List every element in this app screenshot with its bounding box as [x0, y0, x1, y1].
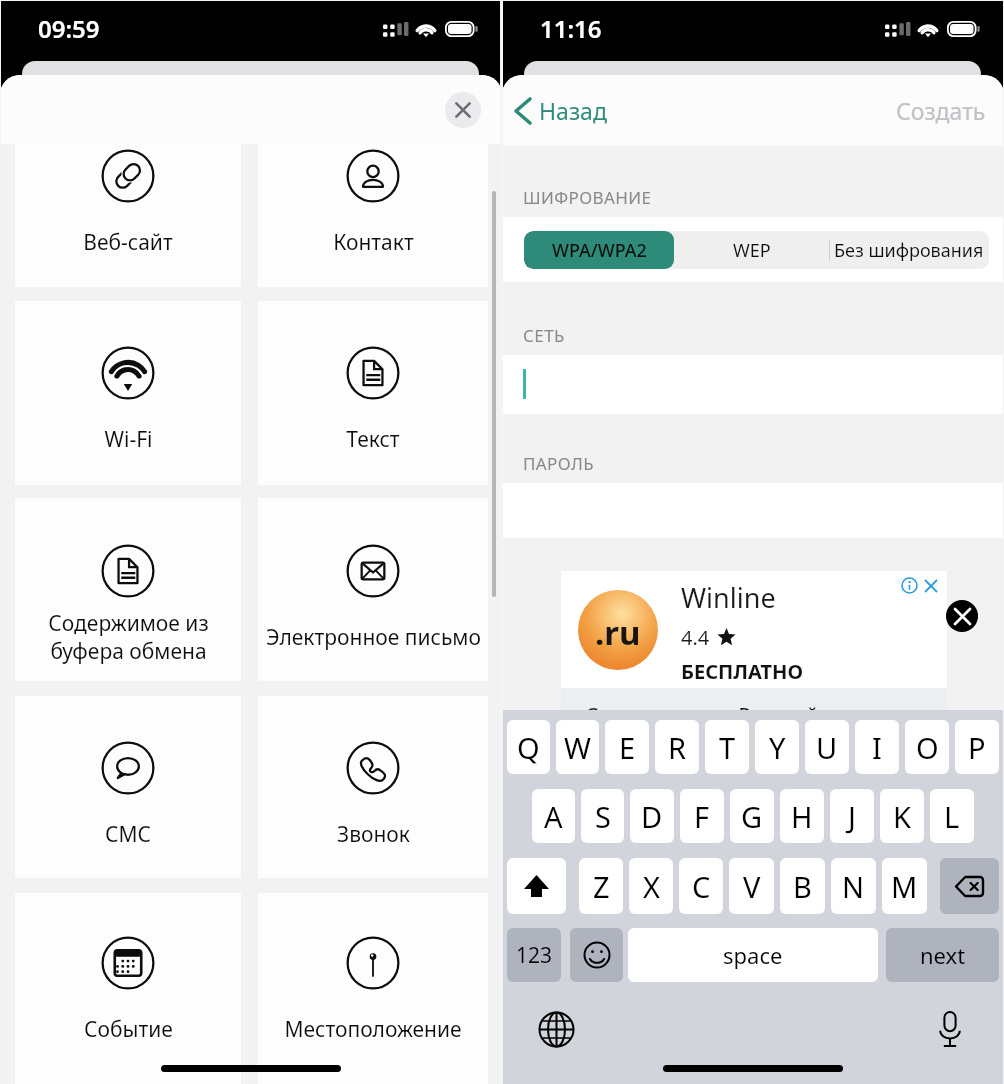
staticText: X: [643, 867, 660, 906]
staticText: B: [793, 867, 812, 906]
button[interactable]: Создать: [896, 95, 986, 126]
button[interactable]: next: [886, 928, 999, 982]
staticText: Q: [517, 728, 540, 767]
staticText: Контакт: [333, 228, 414, 257]
button[interactable]: F: [680, 789, 724, 843]
staticText: 09:59: [38, 12, 100, 45]
staticText: Z: [593, 867, 610, 906]
button[interactable]: H: [780, 789, 824, 843]
button[interactable]: Q: [507, 720, 550, 774]
staticText: Без шифрования: [834, 238, 984, 263]
button[interactable]: СМС: [15, 696, 241, 878]
button[interactable]: Местоположение: [258, 893, 488, 1084]
button[interactable]: Веб-сайт: [15, 144, 241, 287]
button[interactable]: WEP: [674, 231, 829, 269]
staticText: Содержимое Русский: [585, 702, 819, 710]
button[interactable]: C: [679, 858, 723, 914]
staticText: 4.4: [681, 624, 710, 651]
button[interactable]: Y: [755, 720, 799, 774]
button[interactable]: V: [729, 858, 774, 914]
staticText: D: [641, 797, 663, 836]
staticText: Текст: [346, 425, 400, 454]
button[interactable]: Закрыть рекламу: [946, 600, 978, 632]
staticText: P: [968, 728, 986, 767]
button[interactable]: Wi-Fi: [15, 301, 241, 485]
button[interactable]: B: [780, 858, 825, 914]
staticText: Электронное письмо: [266, 623, 481, 652]
staticText: .ru: [595, 610, 641, 655]
staticText: E: [619, 728, 636, 767]
button[interactable]: space: [628, 928, 878, 982]
staticText: СМС: [105, 820, 151, 849]
button[interactable]: J: [830, 789, 874, 843]
staticText: WEP: [733, 238, 771, 263]
staticText: 11:16: [540, 12, 602, 45]
staticText: O: [916, 728, 939, 767]
button[interactable]: W: [556, 720, 599, 774]
button[interactable]: Эмодзи: [570, 928, 623, 982]
button[interactable]: Сменить язык: [538, 1011, 575, 1048]
staticText: J: [848, 797, 856, 836]
button[interactable]: Звонок: [258, 696, 488, 878]
button[interactable]: Текст: [258, 301, 488, 485]
button[interactable]: U: [805, 720, 849, 774]
staticText: ПАРОЛЬ: [523, 452, 594, 475]
staticText: WPA/WPA2: [552, 238, 647, 263]
staticText: U: [816, 728, 838, 767]
button[interactable]: Событие: [15, 893, 241, 1084]
staticText: L: [944, 797, 960, 836]
button[interactable]: Shift: [507, 858, 566, 914]
button[interactable]: E: [605, 720, 649, 774]
staticText: Y: [769, 728, 786, 767]
staticText: W: [564, 728, 591, 767]
button[interactable]: Удалить: [940, 858, 999, 914]
button[interactable]: S: [581, 789, 624, 843]
button[interactable]: Диктовка: [936, 1010, 964, 1050]
button[interactable]: R: [655, 720, 699, 774]
button[interactable]: Z: [579, 858, 623, 914]
button[interactable]: X: [629, 858, 673, 914]
button[interactable]: M: [882, 858, 927, 914]
button[interactable]: 123: [507, 928, 561, 982]
button[interactable]: T: [705, 720, 749, 774]
staticText: Winline: [681, 579, 776, 616]
staticText: S: [595, 797, 611, 836]
button[interactable]: Закрыть: [445, 92, 481, 128]
staticText: Местоположение: [284, 1015, 462, 1044]
staticText: next: [920, 940, 966, 970]
staticText: A: [544, 797, 563, 836]
staticText: V: [743, 867, 761, 906]
button[interactable]: D: [630, 789, 674, 843]
button[interactable]: Назад: [514, 95, 607, 126]
staticText: F: [694, 797, 710, 836]
staticText: space: [723, 940, 783, 970]
staticText: C: [692, 867, 711, 906]
staticText: ШИФРОВАНИЕ: [523, 186, 652, 209]
staticText: СЕТЬ: [523, 324, 565, 347]
staticText: Wi-Fi: [104, 425, 153, 454]
button[interactable]: WPA/WPA2: [524, 231, 674, 269]
button[interactable]: Контакт: [258, 144, 488, 287]
button[interactable]: P: [955, 720, 999, 774]
staticText: R: [668, 728, 687, 767]
staticText: T: [719, 728, 736, 767]
staticText: I: [872, 728, 882, 767]
staticText: K: [893, 797, 911, 836]
button[interactable]: N: [831, 858, 876, 914]
button[interactable]: G: [730, 789, 774, 843]
button[interactable]: Без шифрования: [829, 231, 989, 269]
button[interactable]: K: [880, 789, 924, 843]
staticText: M: [891, 867, 918, 906]
button[interactable]: A: [532, 789, 575, 843]
staticText: Содержимое из буфера обмена: [48, 609, 209, 665]
button[interactable]: I: [855, 720, 899, 774]
button[interactable]: L: [930, 789, 974, 843]
staticText: 123: [516, 941, 553, 970]
button[interactable]: Электронное письмо: [258, 498, 488, 681]
staticText: Веб-сайт: [83, 228, 173, 257]
button[interactable]: O: [905, 720, 949, 774]
staticText: Звонок: [337, 820, 410, 849]
staticText: Событие: [84, 1015, 173, 1044]
button[interactable]: Содержимое из буфера обмена: [15, 498, 241, 681]
staticText: N: [842, 867, 865, 906]
